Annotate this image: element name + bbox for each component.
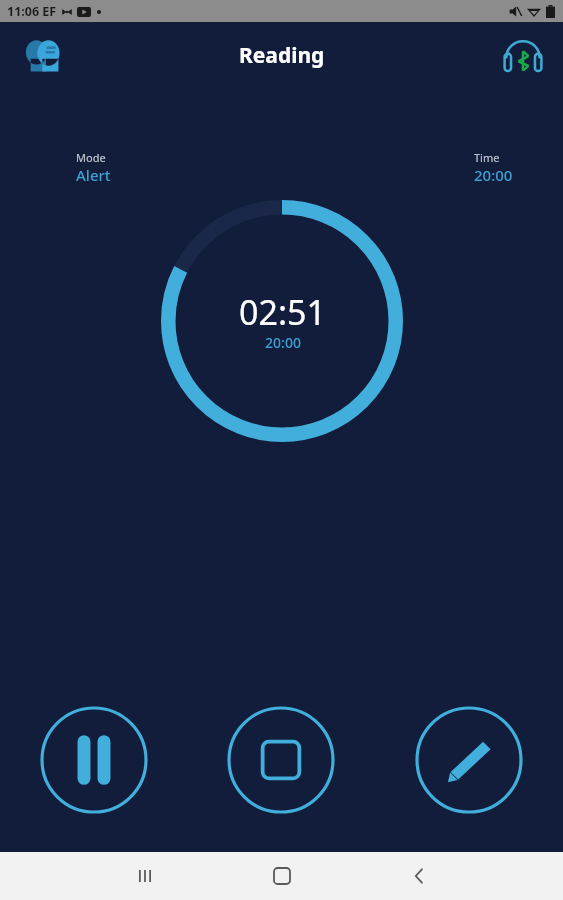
staticText: 02:51 bbox=[239, 289, 326, 335]
button[interactable]: Bluetooth headphones bbox=[497, 29, 549, 81]
staticText: 20:00 bbox=[265, 333, 301, 352]
button[interactable]: Home bbox=[258, 852, 306, 900]
button[interactable]: Pause bbox=[40, 706, 148, 814]
staticText: Reading bbox=[239, 41, 325, 70]
button[interactable]: Edit bbox=[415, 706, 523, 814]
staticText: 11:06 EF bbox=[7, 3, 57, 20]
staticText: 20:00 bbox=[474, 165, 513, 185]
staticText: Alert bbox=[76, 165, 111, 185]
staticText: Time bbox=[474, 150, 500, 165]
button[interactable]: Back bbox=[395, 852, 443, 900]
staticText: Mode bbox=[76, 150, 106, 165]
button[interactable]: Recents bbox=[121, 852, 169, 900]
button[interactable]: Profiles bbox=[16, 29, 68, 81]
button[interactable]: Stop bbox=[227, 706, 335, 814]
